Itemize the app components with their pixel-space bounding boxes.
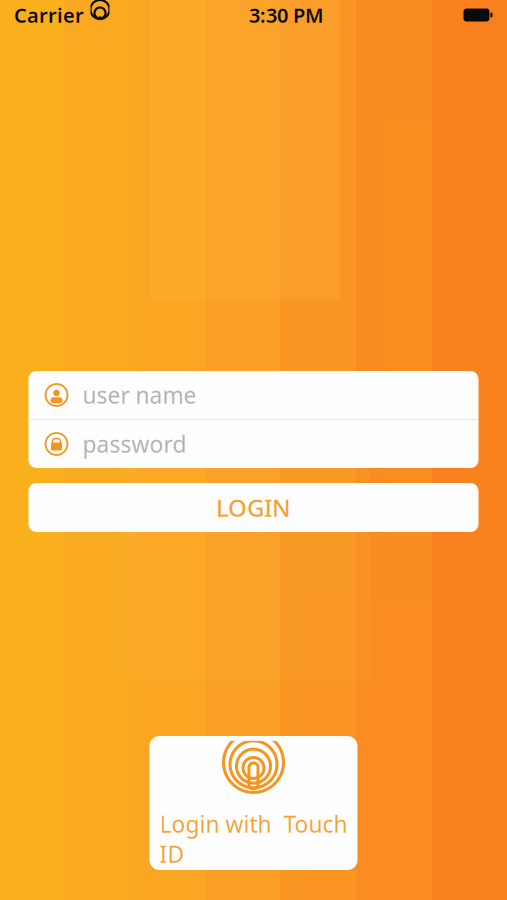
button[interactable]: Login with Touch ID: [149, 736, 357, 870]
button[interactable]: LOGIN: [28, 483, 478, 532]
button[interactable]: user name: [28, 371, 478, 419]
staticText: 3:30 PM: [249, 2, 324, 28]
button[interactable]: password: [28, 420, 478, 468]
staticText: Carrier: [14, 2, 84, 28]
staticText: password: [82, 429, 186, 459]
staticText: user name: [82, 380, 196, 410]
staticText: LOGIN: [216, 492, 291, 523]
staticText: Login with Touch ID: [159, 809, 347, 869]
